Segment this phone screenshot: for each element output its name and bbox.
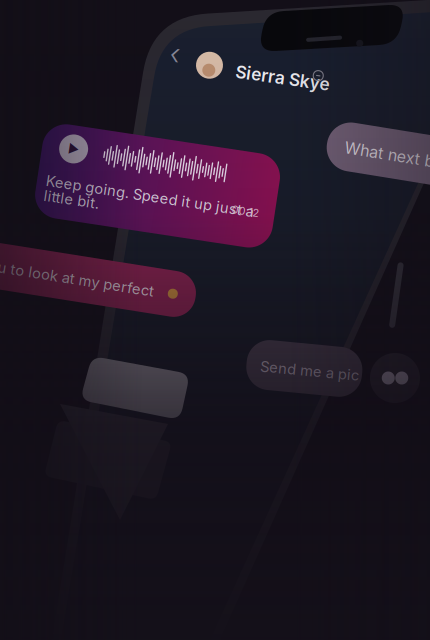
staticText: Keep going. Speed it up just a — [55, 171, 265, 189]
staticText: ▶ — [72, 137, 83, 152]
staticText: ‹ — [171, 35, 181, 70]
staticText: Send me a pic — [263, 356, 362, 374]
button[interactable]: Effects — [370, 353, 420, 403]
staticText: What next bab — [349, 135, 430, 154]
staticText: t you to look at my perfect — [0, 253, 160, 271]
staticText: Sierra Skye — [237, 61, 332, 82]
staticText: little bit. — [55, 186, 111, 204]
